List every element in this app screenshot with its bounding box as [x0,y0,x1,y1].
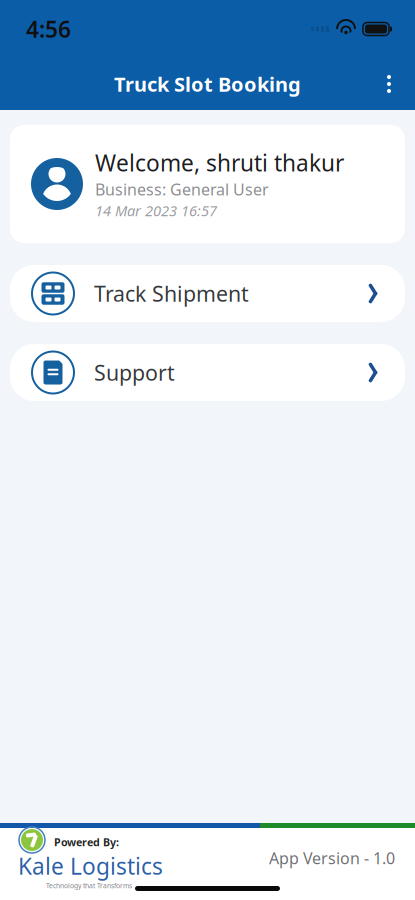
staticText: 4:56 [26,14,71,44]
staticText: Track Shipment [94,279,249,308]
staticText: Support [94,358,175,387]
staticText: App Version - 1.0 [269,847,395,869]
button[interactable]: Track Shipment [0,265,415,322]
button[interactable]: More options [369,62,409,106]
staticText: Welcome, shruti thakur [95,148,344,178]
staticText: 14 Mar 2023 16:57 [95,201,217,220]
staticText: Technology that Transforms [46,881,132,890]
staticText: Powered By: [54,835,119,849]
staticText: Truck Slot Booking [114,71,301,97]
staticText: Business: General User [95,179,269,200]
button[interactable]: Support [0,344,415,401]
staticText: Kale Logistics [18,851,163,881]
